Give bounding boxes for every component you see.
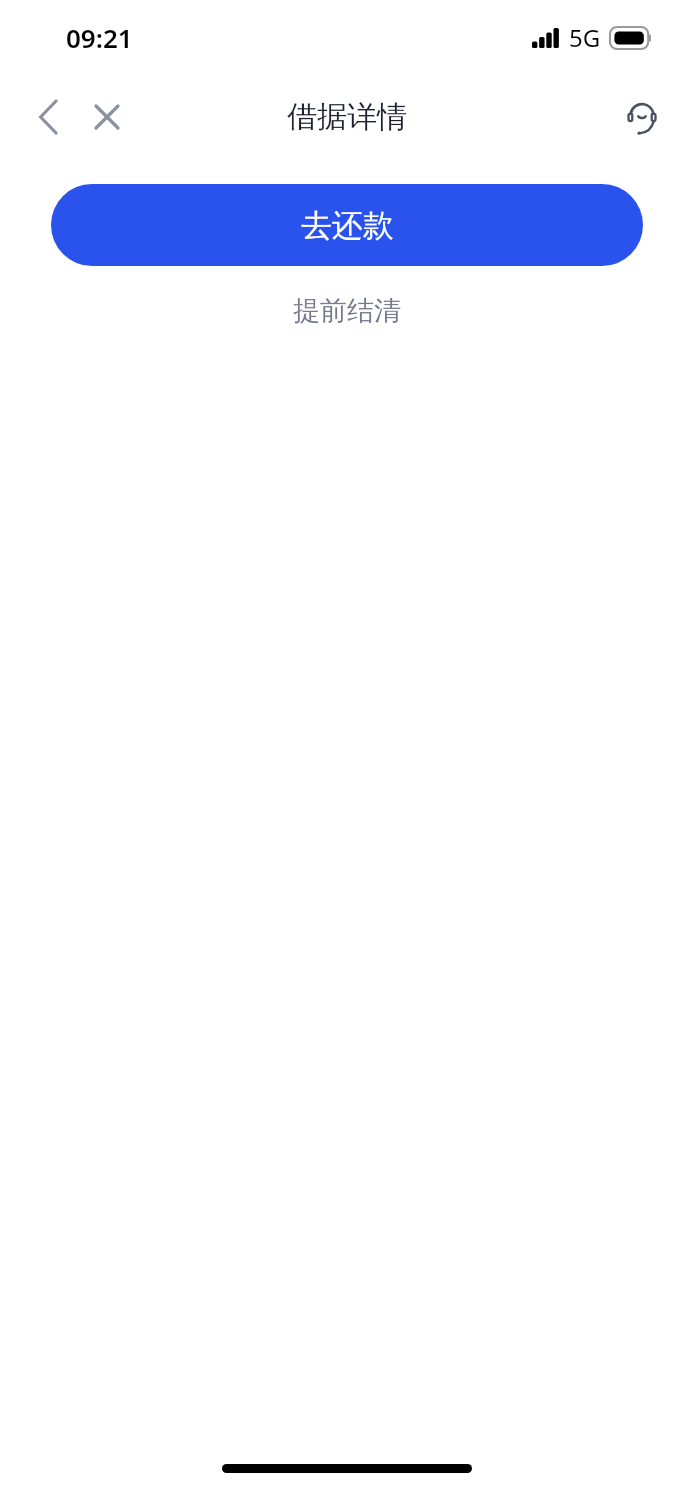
button[interactable]: Close — [84, 94, 130, 140]
staticText: 去还款 — [301, 206, 394, 245]
staticText: 提前结清 — [293, 294, 401, 328]
staticText: 09:21 — [66, 20, 133, 55]
button[interactable]: 去还款 — [51, 184, 643, 266]
staticText: 5G — [569, 21, 601, 54]
button[interactable]: Back — [26, 94, 72, 140]
staticText: 借据详情 — [287, 98, 407, 136]
button[interactable]: Customer service — [616, 91, 668, 143]
button[interactable]: 提前结清 — [269, 288, 425, 334]
